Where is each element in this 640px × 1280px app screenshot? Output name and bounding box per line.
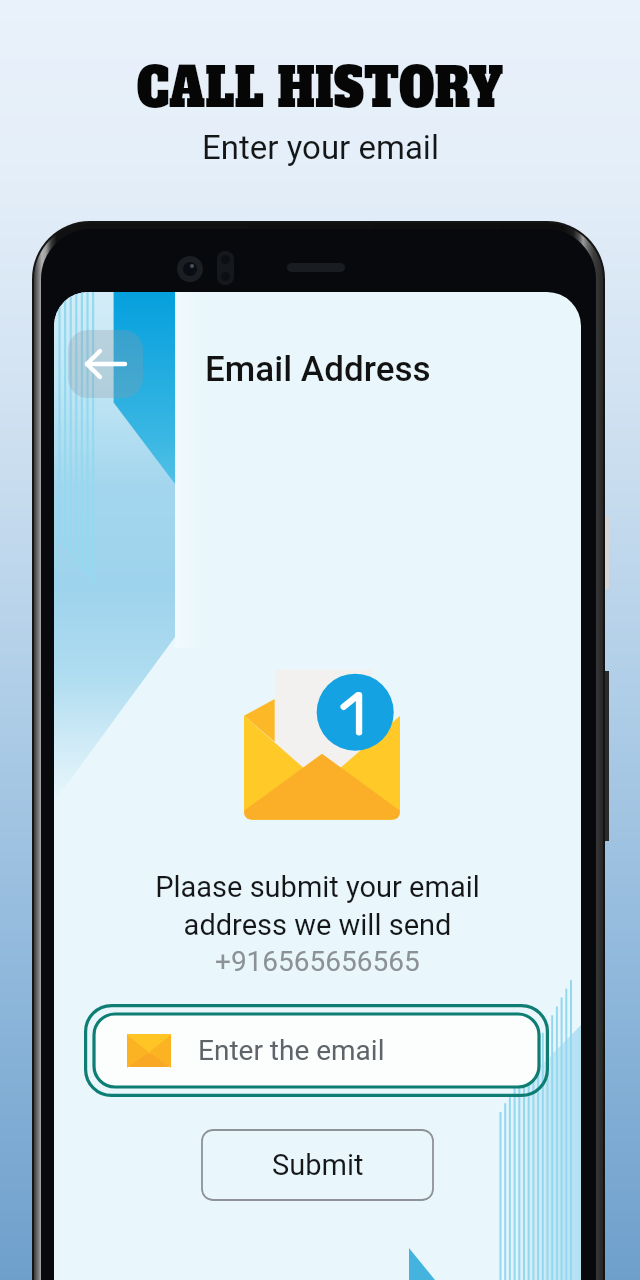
button[interactable]: Back	[68, 330, 143, 398]
button[interactable]: Enter the email	[84, 1004, 549, 1097]
staticText: Email Address	[205, 349, 431, 390]
staticText: CALL HISTORY	[137, 50, 503, 125]
staticText: Plaase submit your email address we will…	[155, 870, 480, 942]
staticText: Enter the email	[198, 1034, 385, 1067]
staticText: +916565656565	[215, 945, 420, 978]
staticText: Submit	[272, 1148, 364, 1182]
staticText: Enter your email	[202, 128, 439, 167]
button[interactable]: Submit	[201, 1129, 434, 1201]
